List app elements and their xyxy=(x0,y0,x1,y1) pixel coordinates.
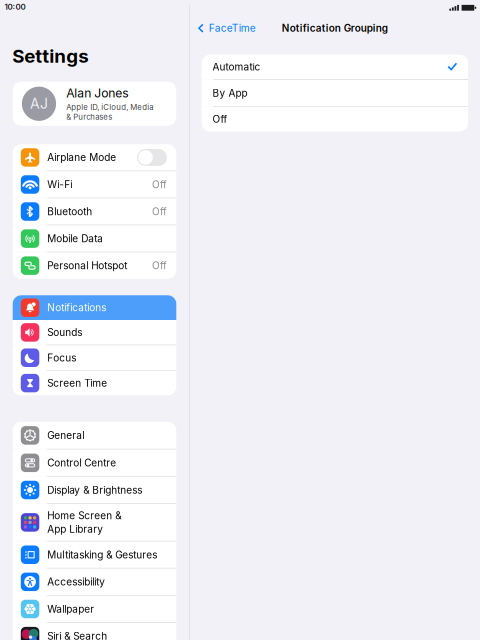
staticText: App Library xyxy=(47,523,103,535)
button[interactable]: Sounds xyxy=(13,320,176,345)
staticText: Siri & Search xyxy=(47,630,107,640)
staticText: Mobile Data xyxy=(47,232,103,245)
button[interactable]: Siri & Search xyxy=(13,623,176,640)
button[interactable]: Display & Brightness xyxy=(13,477,176,503)
button[interactable]: Wallpaper xyxy=(13,596,176,622)
staticText: Settings xyxy=(12,45,88,67)
button[interactable]: Screen Time xyxy=(13,371,176,395)
staticText: FaceTime xyxy=(209,22,256,34)
button[interactable]: Airplane Mode xyxy=(13,144,176,171)
button[interactable]: General xyxy=(13,422,176,449)
staticText: By App xyxy=(213,87,248,99)
staticText: Automatic xyxy=(213,61,261,73)
button[interactable]: Multitasking & Gestures xyxy=(13,542,176,568)
button[interactable]: Automatic xyxy=(202,55,468,79)
button[interactable]: Home Screen & xyxy=(13,504,176,541)
staticText: & Purchases xyxy=(66,112,112,122)
button[interactable]: Bluetooth xyxy=(13,198,176,225)
staticText: Control Centre xyxy=(47,457,116,469)
staticText: Wallpaper xyxy=(47,603,94,615)
staticText: AJ xyxy=(30,95,48,112)
staticText: Off xyxy=(213,113,228,125)
button[interactable]: Personal Hotspot xyxy=(13,252,176,279)
staticText: Off xyxy=(152,260,167,272)
button[interactable]: Notifications xyxy=(13,295,176,320)
staticText: Home Screen & xyxy=(47,509,121,522)
button[interactable]: Accessibility xyxy=(13,569,176,595)
button[interactable]: Wi-Fi xyxy=(13,171,176,198)
staticText: 10:00 xyxy=(5,2,26,12)
staticText: Off xyxy=(152,205,167,218)
button[interactable]: By App xyxy=(202,80,468,106)
button[interactable]: Focus xyxy=(13,345,176,370)
staticText: Focus xyxy=(47,352,76,364)
staticText: Notification Grouping xyxy=(282,22,388,34)
staticText: Off xyxy=(152,178,167,190)
staticText: Multitasking & Gestures xyxy=(47,549,157,561)
staticText: Display & Brightness xyxy=(47,484,142,496)
staticText: Notifications xyxy=(47,302,106,314)
staticText: Apple ID, iCloud, Media xyxy=(66,102,153,112)
button[interactable]: Mobile Data xyxy=(13,225,176,252)
staticText: Airplane Mode xyxy=(47,151,116,163)
button[interactable]: Control Centre xyxy=(13,450,176,476)
staticText: General xyxy=(47,429,84,441)
staticText: Personal Hotspot xyxy=(47,260,127,272)
staticText: Screen Time xyxy=(47,377,107,389)
button[interactable]: FaceTime xyxy=(198,18,256,38)
staticText: Accessibility xyxy=(47,576,105,588)
staticText: Bluetooth xyxy=(47,205,92,218)
button[interactable]: AJ xyxy=(13,82,176,126)
staticText: Sounds xyxy=(47,326,82,338)
staticText: Wi-Fi xyxy=(47,178,72,190)
staticText: Alan Jones xyxy=(66,86,128,100)
button[interactable]: Off xyxy=(202,107,468,132)
